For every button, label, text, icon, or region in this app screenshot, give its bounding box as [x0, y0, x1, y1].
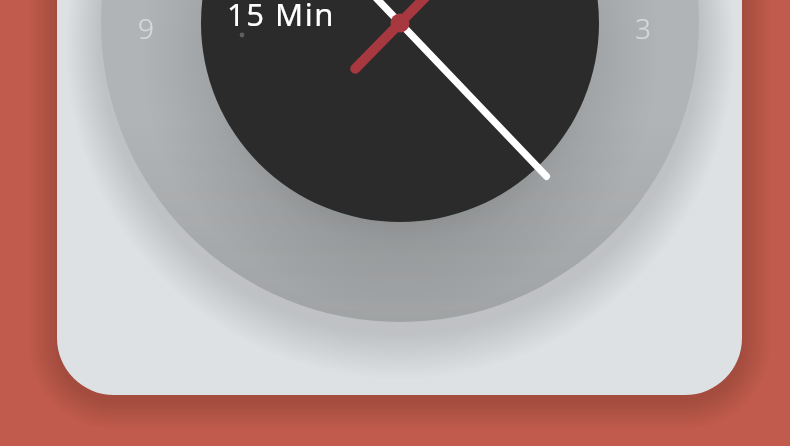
- button[interactable]: Analog watch face, 15 Min timer: [0, 0, 790, 446]
